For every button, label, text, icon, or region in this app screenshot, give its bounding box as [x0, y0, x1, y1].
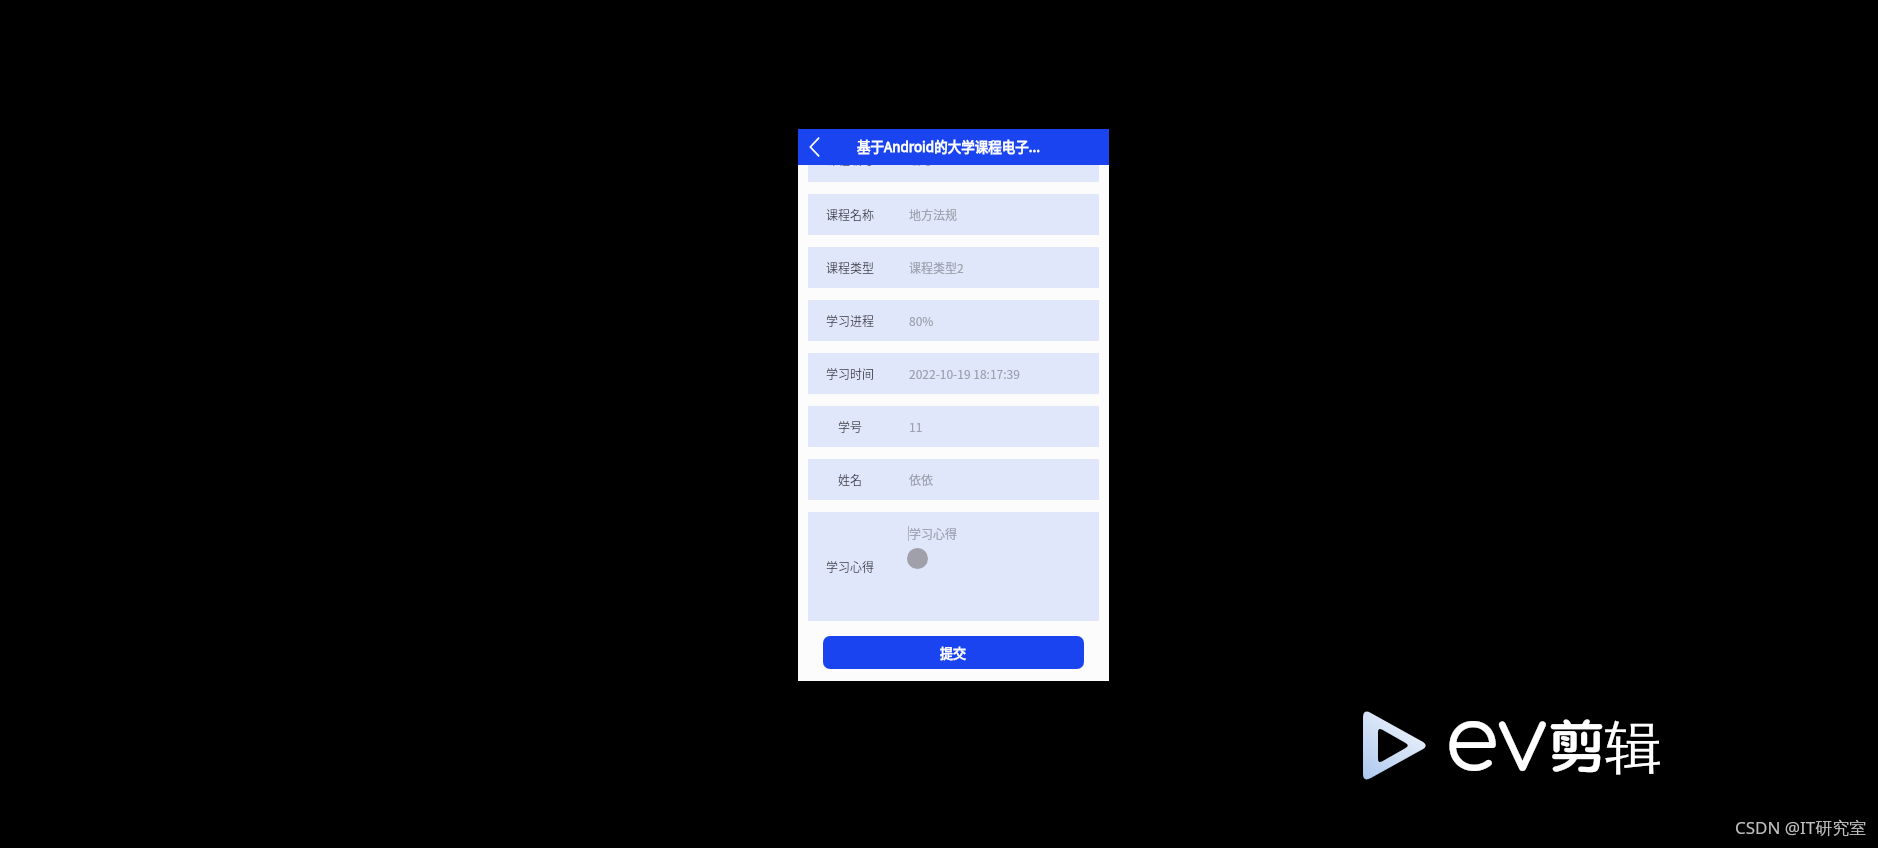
staticText: CSDN @IT研究室 [1735, 816, 1867, 839]
staticText: 课程名称 [826, 206, 874, 223]
staticText: 课程类型 [826, 259, 874, 276]
button[interactable]: 提交 [823, 636, 1084, 669]
staticText: 学习心得 [909, 525, 958, 542]
button[interactable]: 姓名 [808, 459, 1099, 500]
button[interactable]: 学号 [808, 406, 1099, 447]
staticText: 课程编号 [826, 151, 874, 168]
staticText: 2022-10-19 18:17:39 [909, 365, 1020, 382]
staticText: 学习时间 [826, 365, 874, 382]
button[interactable]: 学习心得 [808, 512, 1099, 621]
staticText: 剪辑 [1548, 706, 1662, 786]
staticText: 学习进程 [826, 312, 874, 329]
staticText: 学号 [838, 418, 863, 435]
button[interactable]: 学习进程 [808, 300, 1099, 341]
button[interactable]: Back [800, 133, 828, 161]
button[interactable]: 课程编号 [808, 141, 1099, 182]
staticText: 基于Android的大学课程电子... [857, 136, 1040, 156]
staticText: 学习心得 [826, 558, 874, 575]
staticText: ev [1444, 692, 1548, 792]
button[interactable]: 课程名称 [808, 194, 1099, 235]
button[interactable]: 学习时间 [808, 353, 1099, 394]
staticText: 提交 [940, 643, 967, 662]
staticText: 依依 [909, 471, 934, 488]
staticText: 地方法规 [909, 206, 958, 223]
button[interactable]: 课程类型 [808, 247, 1099, 288]
staticText: 姓名 [838, 471, 863, 488]
staticText: 课程类型2 [909, 259, 964, 276]
staticText: 80% [909, 312, 934, 329]
staticText: 11 [909, 418, 923, 435]
staticText: 编号 [909, 151, 934, 168]
